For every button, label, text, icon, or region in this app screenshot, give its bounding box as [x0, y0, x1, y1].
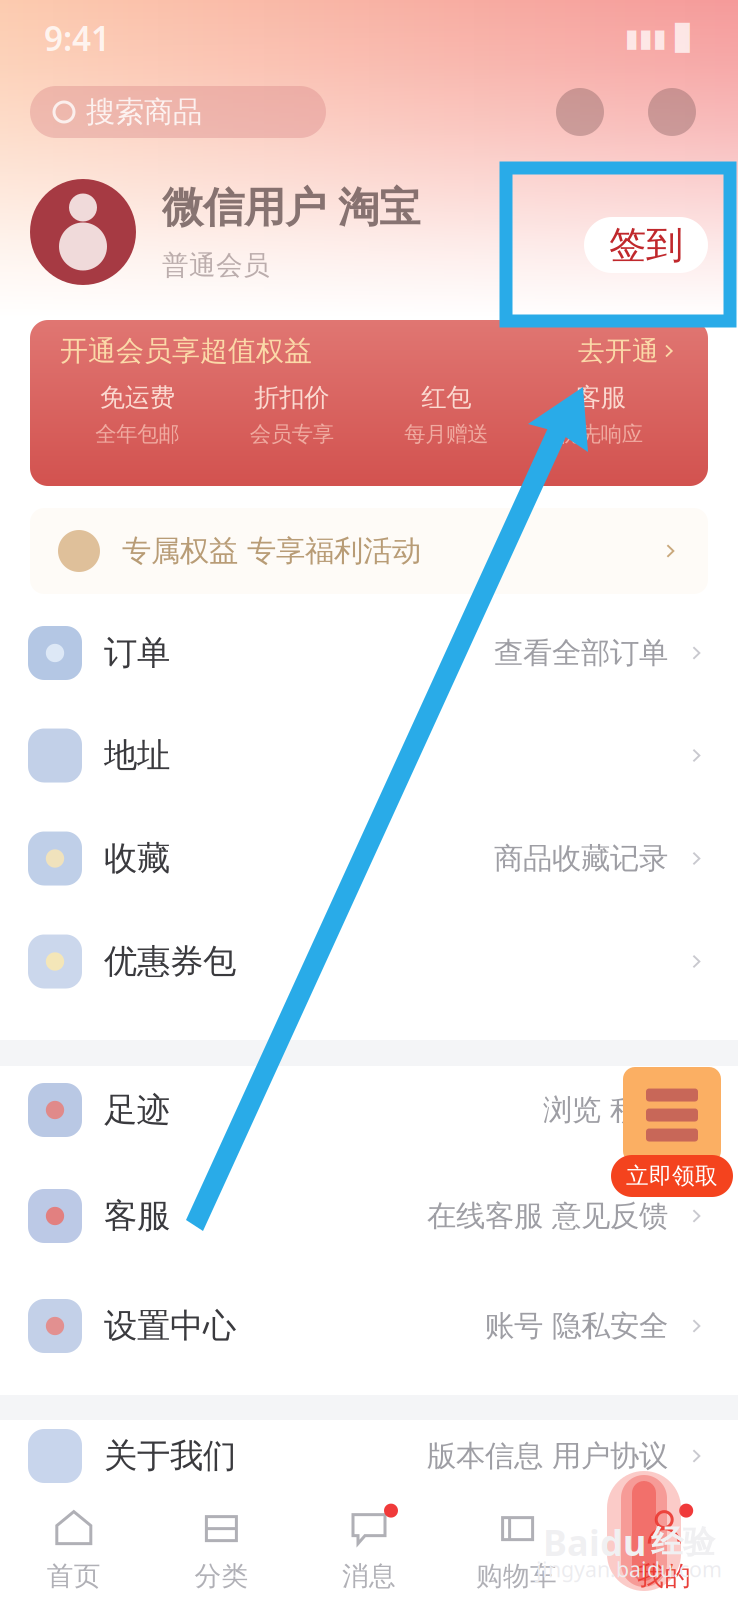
button[interactable]: 地址	[0, 704, 738, 807]
staticText: 收藏	[104, 838, 170, 879]
button[interactable]: 立即领取	[611, 1067, 733, 1197]
staticText: 去开通	[578, 335, 659, 367]
staticText: 消息	[342, 1560, 396, 1592]
staticText: 查看全部订单	[494, 635, 668, 671]
button[interactable]: 关于我们	[0, 1420, 738, 1492]
button[interactable]: 客服	[0, 1154, 738, 1278]
staticText: 订单	[104, 632, 170, 673]
staticText: 在线客服 意见反馈	[427, 1198, 668, 1234]
button[interactable]: 设置	[648, 88, 696, 136]
button[interactable]: 设置中心	[0, 1278, 738, 1374]
button[interactable]: 购物车	[443, 1504, 590, 1592]
staticText: 红包	[421, 382, 471, 413]
staticText: ▮▮▮ ▊	[625, 24, 694, 52]
button[interactable]: 优惠券包	[0, 910, 738, 1013]
button[interactable]: 开通会员享超值权益	[0, 316, 738, 486]
staticText: 客服	[104, 1195, 170, 1236]
staticText: jingyan.baidu.com	[536, 1555, 722, 1583]
staticText: 版本信息 用户协议	[427, 1438, 668, 1474]
staticText: 设置中心	[104, 1305, 236, 1346]
staticText: 账号 隐私安全	[485, 1308, 668, 1344]
button[interactable]: 消息	[295, 1504, 443, 1592]
staticText: 优先响应	[559, 421, 643, 447]
staticText: 普通会员	[162, 249, 270, 282]
staticText: 微信用户 淘宝	[162, 182, 420, 233]
button[interactable]: 我的	[590, 1504, 738, 1592]
staticText: 客服	[576, 382, 626, 413]
staticText: 9:41	[44, 16, 110, 60]
staticText: 优惠券包	[104, 941, 236, 982]
button[interactable]: 签到	[584, 217, 708, 273]
staticText: 足迹	[104, 1089, 170, 1130]
staticText: 商品收藏记录	[494, 840, 668, 876]
staticText: 全年包邮	[95, 421, 179, 447]
staticText: 签到	[609, 222, 683, 268]
staticText: 浏览 积分	[543, 1092, 668, 1128]
staticText: 每月赠送	[404, 421, 488, 447]
staticText: 专属权益 专享福利活动	[122, 533, 421, 569]
button[interactable]: 专属权益 专享福利活动	[0, 486, 738, 594]
staticText: 经验	[651, 1522, 715, 1562]
staticText: 搜索商品	[86, 94, 202, 130]
staticText: 我的	[637, 1560, 691, 1592]
staticText: 地址	[104, 735, 170, 776]
button[interactable]: 搜索商品	[30, 86, 326, 138]
staticText: 购物车	[476, 1560, 557, 1592]
staticText: 立即领取	[626, 1162, 718, 1190]
staticText: 折扣价	[254, 382, 329, 413]
staticText: 关于我们	[104, 1435, 236, 1476]
button[interactable]: 客服	[556, 88, 604, 136]
button[interactable]: 订单	[0, 602, 738, 704]
staticText: 会员专享	[250, 421, 334, 447]
staticText: 分类	[194, 1560, 248, 1592]
button[interactable]: 收藏	[0, 807, 738, 910]
staticText: Baidu	[543, 1518, 646, 1566]
button[interactable]: 足迹	[0, 1066, 738, 1154]
button[interactable]: 首页	[0, 1504, 148, 1592]
staticText: 免运费	[100, 382, 175, 413]
staticText: 开通会员享超值权益	[60, 334, 312, 368]
button[interactable]: 分类	[148, 1504, 295, 1592]
staticText: 首页	[47, 1560, 101, 1592]
